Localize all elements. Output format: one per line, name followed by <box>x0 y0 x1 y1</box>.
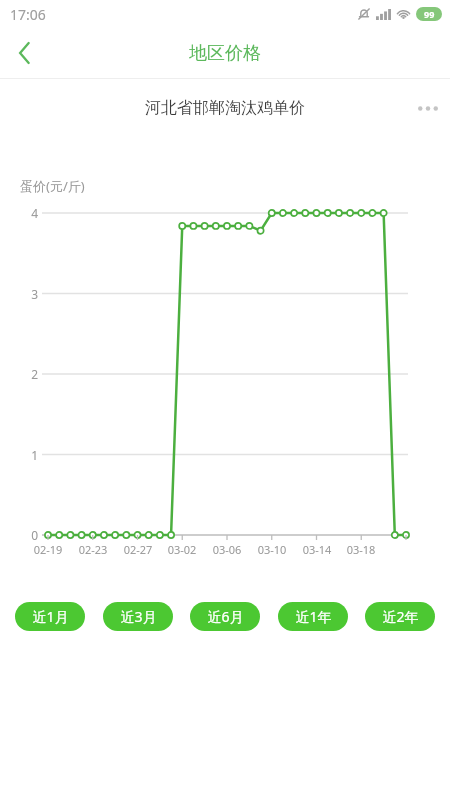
staticText: 近2年 <box>382 607 419 626</box>
staticText: 蛋价(元/斤) <box>20 177 85 195</box>
staticText: 03-14 <box>296 542 338 557</box>
button[interactable]: Back <box>0 29 48 77</box>
staticText: 03-06 <box>206 542 248 557</box>
staticText: 河北省邯郸淘汰鸡单价 <box>145 98 305 118</box>
button[interactable]: 近6月 <box>190 602 260 631</box>
button[interactable]: 近3月 <box>103 602 173 631</box>
staticText: 4 <box>22 205 38 221</box>
staticText: 3 <box>22 286 38 302</box>
button[interactable]: 近1月 <box>15 602 85 631</box>
staticText: 02-19 <box>27 542 69 557</box>
staticText: 03-02 <box>161 542 203 557</box>
button[interactable]: More options <box>406 86 450 130</box>
staticText: 03-18 <box>340 542 382 557</box>
staticText: 99 <box>424 8 435 20</box>
staticText: 2 <box>22 366 38 382</box>
button[interactable]: 近1年 <box>278 602 348 631</box>
staticText: 03-10 <box>251 542 293 557</box>
staticText: 近1年 <box>295 607 332 626</box>
staticText: 近1月 <box>32 607 69 626</box>
staticText: 近6月 <box>207 607 244 626</box>
button[interactable]: 近2年 <box>365 602 435 631</box>
staticText: 近3月 <box>120 607 157 626</box>
staticText: 02-23 <box>72 542 114 557</box>
staticText: 地区价格 <box>189 42 261 65</box>
staticText: 1 <box>22 447 38 463</box>
staticText: 02-27 <box>117 542 159 557</box>
staticText: 17:06 <box>10 5 46 24</box>
staticText: 0 <box>22 527 38 543</box>
